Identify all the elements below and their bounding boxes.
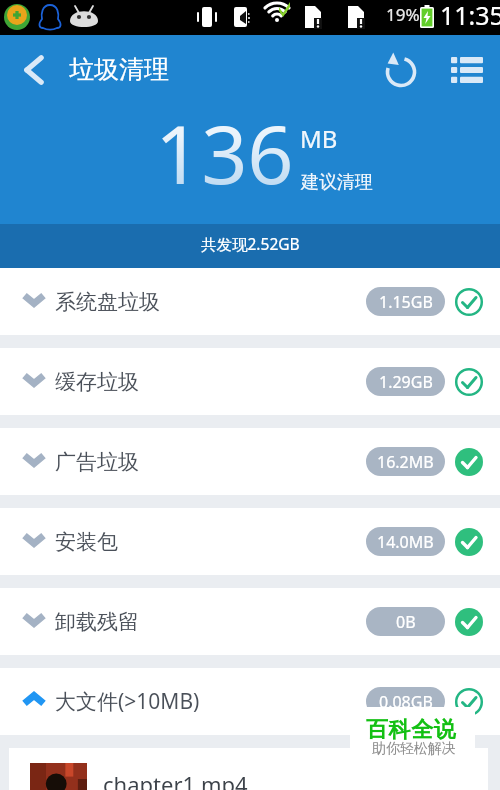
staticText: 14.0MB xyxy=(377,531,434,553)
staticText: 19% xyxy=(386,3,420,26)
button[interactable]: Select xyxy=(453,686,485,718)
button[interactable]: Select xyxy=(453,526,485,558)
staticText: 0B xyxy=(396,611,416,633)
staticText: 136 xyxy=(155,97,294,207)
staticText: 1.29GB xyxy=(379,371,433,393)
button[interactable]: 广告垃圾 xyxy=(0,428,500,495)
button[interactable]: chapter1.mp4 xyxy=(9,748,488,790)
button[interactable]: Select xyxy=(453,446,485,478)
staticText: 建议清理 xyxy=(301,171,373,194)
button[interactable]: Select xyxy=(453,606,485,638)
staticText: 广告垃圾 xyxy=(55,449,139,475)
button[interactable]: 安装包 xyxy=(0,508,500,575)
staticText: chapter1.mp4 xyxy=(103,769,248,790)
button[interactable]: 系统盘垃圾 xyxy=(0,268,500,335)
staticText: 卸载残留 xyxy=(55,609,139,635)
button[interactable]: Select xyxy=(453,286,485,318)
staticText: 大文件(>10MB) xyxy=(55,687,200,716)
staticText: 缓存垃圾 xyxy=(55,369,139,395)
button[interactable]: 卸载残留 xyxy=(0,588,500,655)
staticText: 16.2MB xyxy=(377,451,434,473)
staticText: 11:35 xyxy=(440,0,500,32)
button[interactable]: Select xyxy=(453,366,485,398)
staticText: 百科全说 xyxy=(366,716,457,744)
staticText: 垃圾清理 xyxy=(69,54,169,85)
staticText: 安装包 xyxy=(55,529,118,555)
staticText: 助你轻松解决 xyxy=(372,740,456,758)
staticText: 系统盘垃圾 xyxy=(55,289,160,315)
button[interactable]: 大文件(>10MB) xyxy=(0,668,500,735)
staticText: MB xyxy=(300,122,338,155)
staticText: 共发现2.52GB xyxy=(201,233,300,254)
staticText: 1.15GB xyxy=(379,291,433,313)
button[interactable]: List view xyxy=(444,35,490,105)
button[interactable]: Refresh xyxy=(378,35,424,105)
button[interactable]: Back xyxy=(8,35,60,105)
button[interactable]: 缓存垃圾 xyxy=(0,348,500,415)
staticText: 0.08GB xyxy=(379,691,433,713)
